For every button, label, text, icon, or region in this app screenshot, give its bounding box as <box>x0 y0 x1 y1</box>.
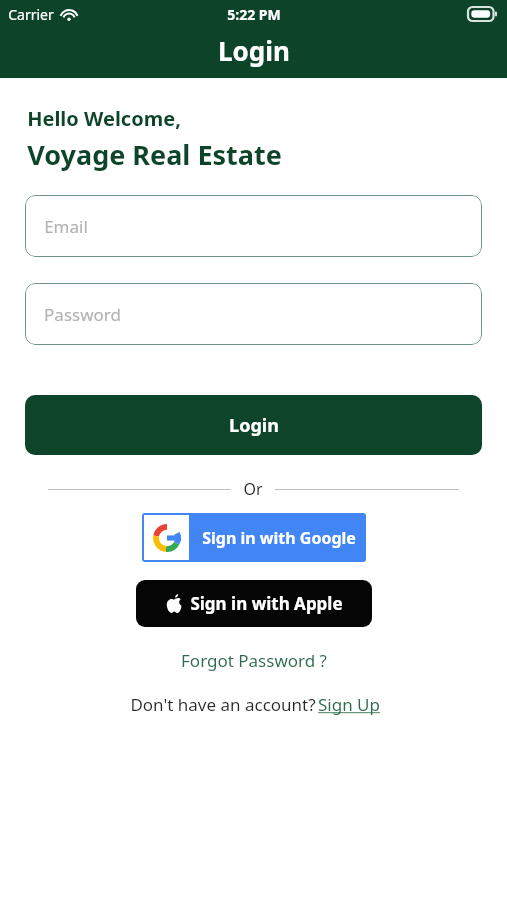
button[interactable]: Sign in with Google <box>142 513 366 562</box>
staticText: Or <box>243 478 263 500</box>
staticText: Sign Up <box>318 693 380 716</box>
button[interactable]: Password <box>25 283 482 345</box>
button[interactable]: Sign in with Apple <box>136 580 372 627</box>
staticText: Login <box>218 33 290 68</box>
staticText: Voyage Real Estate <box>27 136 282 173</box>
staticText: Login <box>229 413 279 438</box>
staticText: Hello Welcome, <box>27 105 181 132</box>
staticText: Sign in with Apple <box>190 592 343 615</box>
staticText: Don't have an account? <box>128 693 318 716</box>
button[interactable]: Sign Up <box>318 693 380 716</box>
staticText: Forgot Password ? <box>181 649 327 672</box>
other: Wi-Fi <box>60 8 78 21</box>
staticText: 5:22 PM <box>227 5 281 24</box>
button[interactable]: Forgot Password ? <box>173 646 335 675</box>
staticText: Password <box>44 303 121 326</box>
staticText: Sign in with Google <box>202 527 356 549</box>
staticText: Carrier <box>8 5 54 24</box>
staticText: Email <box>44 215 88 238</box>
other: Battery <box>468 7 497 21</box>
button[interactable]: Login <box>25 395 482 455</box>
button[interactable]: Email <box>25 195 482 257</box>
